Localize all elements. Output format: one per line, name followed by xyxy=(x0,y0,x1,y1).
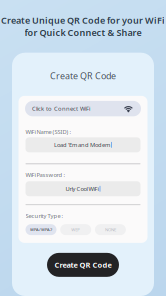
button[interactable]: Click to Connect WiFi xyxy=(25,101,141,116)
staticText: NONE xyxy=(105,227,116,233)
staticText: Load 'Em and Modem xyxy=(54,141,110,149)
staticText: Create QR Code xyxy=(50,70,116,82)
staticText: Create QR Code xyxy=(54,260,111,270)
button[interactable]: Urly Cool WiFi xyxy=(25,181,140,196)
staticText: WiFi Name (SSID) : xyxy=(25,128,71,136)
staticText: Urly Cool WiFi xyxy=(66,185,99,193)
staticText: Security Type : xyxy=(25,212,63,220)
staticText: Create Unique QR Code for your WiFi xyxy=(1,14,165,26)
button[interactable]: NONE xyxy=(95,224,126,235)
button[interactable]: Create QR Code xyxy=(47,253,119,277)
button[interactable]: WPA/WPA2 xyxy=(25,224,56,235)
staticText: for Quick Connect & Share xyxy=(24,26,141,39)
staticText: WiFi Password : xyxy=(25,171,65,179)
button[interactable]: WEP xyxy=(60,224,91,235)
staticText: WPA/WPA2 xyxy=(30,227,52,233)
button[interactable]: Load 'Em and Modem xyxy=(25,137,140,152)
staticText: Click to Connect WiFi xyxy=(32,105,90,113)
staticText: WEP xyxy=(71,227,80,233)
